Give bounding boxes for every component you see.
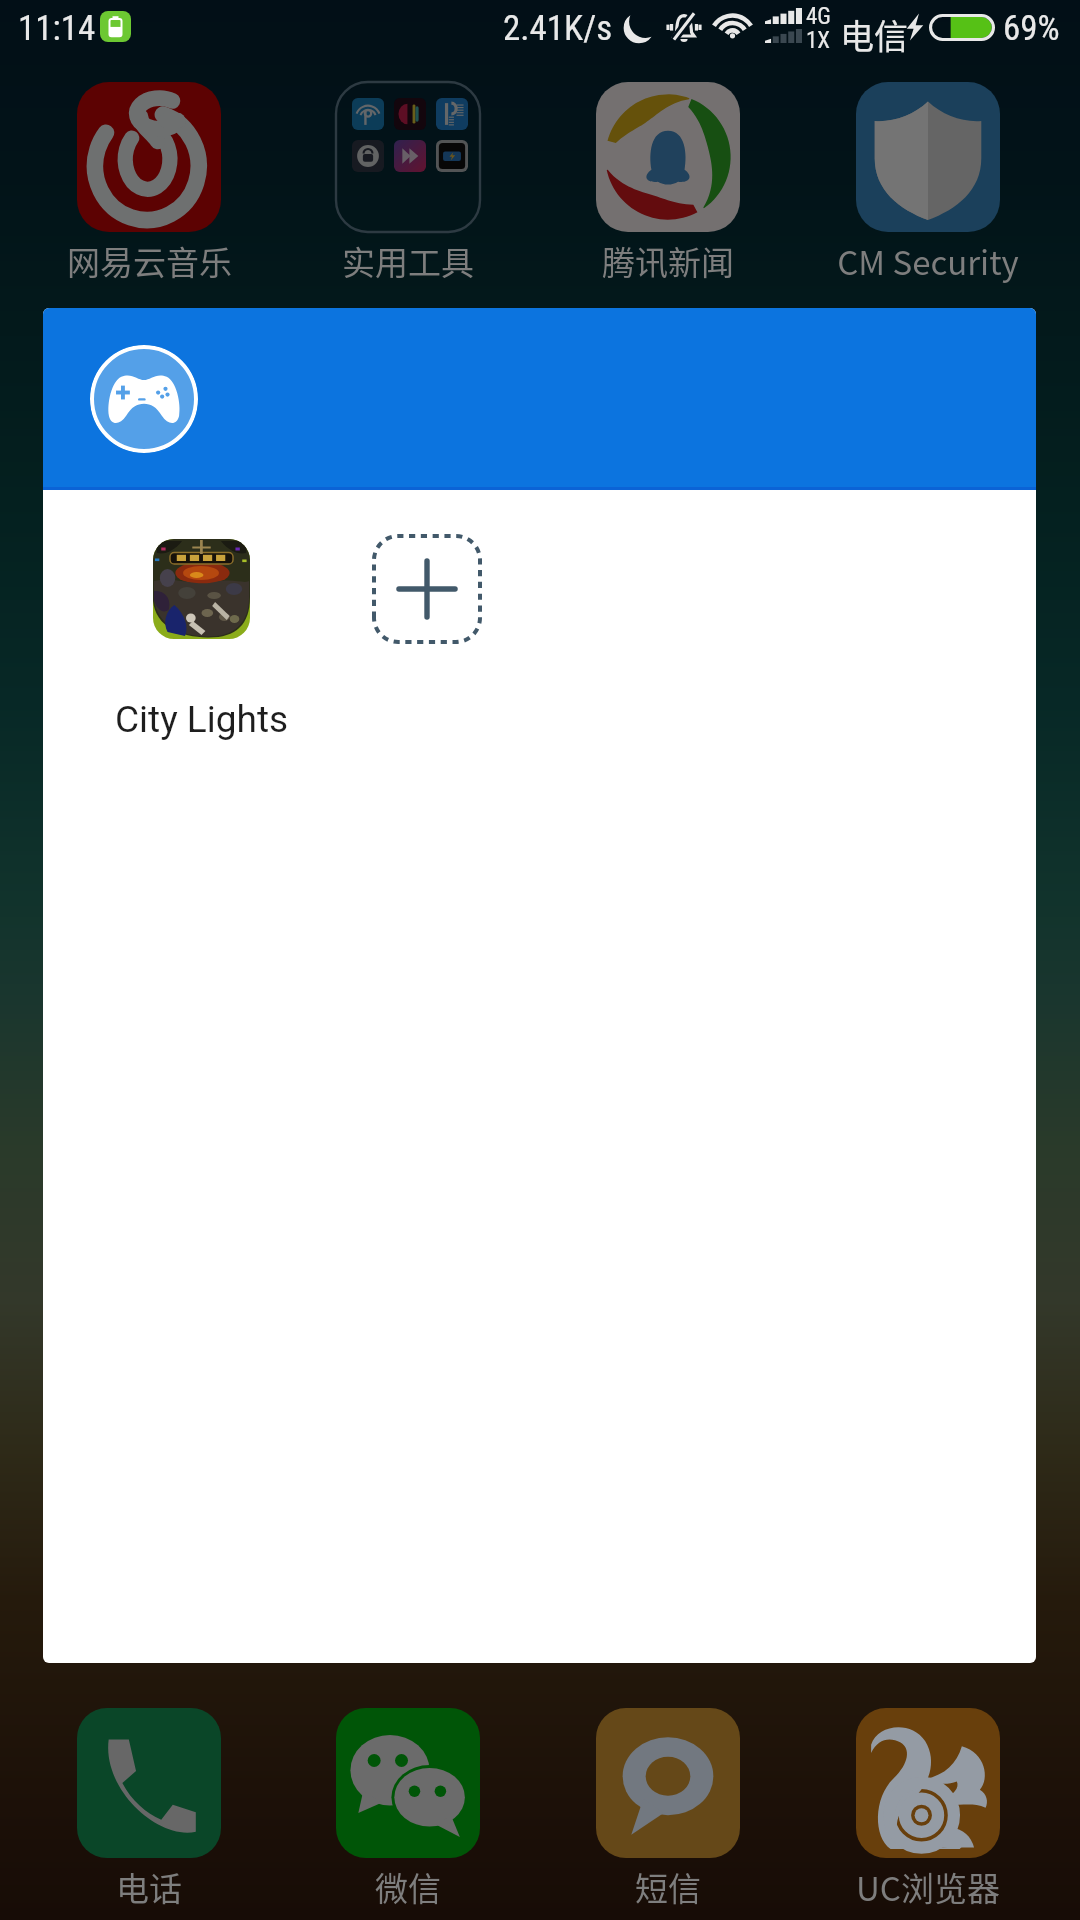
staticText: 微信 [375, 1863, 441, 1911]
staticText: 2.41K/s [503, 8, 613, 49]
button[interactable]: Game profile [90, 345, 198, 453]
staticText: 1X [806, 27, 831, 54]
button[interactable]: 网易云音乐 [24, 82, 274, 285]
button[interactable]: UC浏览器 [803, 1708, 1053, 1911]
button[interactable]: 短信 [543, 1708, 793, 1911]
staticText: UC浏览器 [856, 1863, 1000, 1911]
staticText: 电话 [116, 1863, 182, 1911]
button[interactable]: 电话 [24, 1708, 274, 1911]
staticText: City Lights [115, 698, 289, 741]
button[interactable]: 实用工具 [283, 82, 533, 285]
staticText: 网易云音乐 [67, 237, 232, 285]
button[interactable]: CM Security [803, 82, 1053, 285]
staticText: 腾讯新闻 [602, 237, 734, 285]
staticText: CM Security [837, 237, 1019, 285]
staticText: 4G [806, 3, 831, 30]
staticText: 11:14 [18, 8, 96, 49]
staticText: 实用工具 [342, 237, 474, 285]
staticText: 短信 [635, 1863, 701, 1911]
staticText: 电信 [840, 10, 908, 59]
button[interactable]: 微信 [283, 1708, 533, 1911]
staticText: 69% [1003, 8, 1060, 49]
button[interactable]: Add game [372, 534, 482, 644]
button[interactable] [153, 539, 250, 639]
button[interactable]: 腾讯新闻 [543, 82, 793, 285]
